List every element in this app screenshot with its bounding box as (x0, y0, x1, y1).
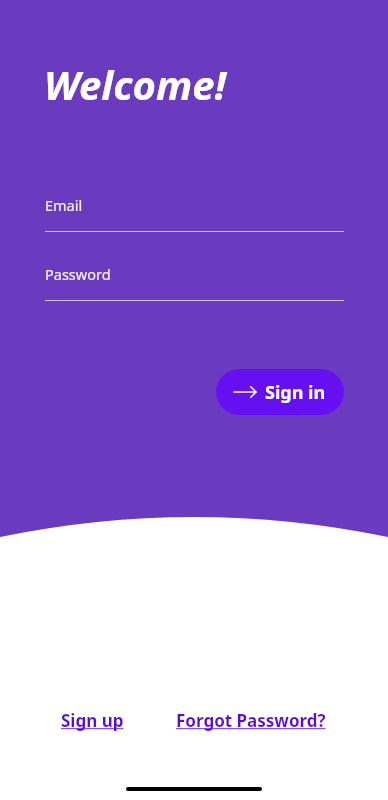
other: Sign in (234, 385, 256, 399)
button[interactable]: Password (45, 264, 344, 301)
staticText: Welcome! (44, 57, 226, 111)
staticText: Sign in (265, 380, 326, 405)
staticText: Password (45, 264, 111, 284)
staticText: Email (45, 195, 83, 215)
button[interactable]: Forgot Password? (174, 705, 328, 736)
button[interactable]: Sign in (216, 369, 344, 415)
button[interactable]: Sign up (59, 705, 126, 736)
button[interactable]: Email (45, 195, 344, 232)
staticText: Forgot Password? (176, 709, 326, 732)
staticText: Sign up (61, 709, 124, 732)
